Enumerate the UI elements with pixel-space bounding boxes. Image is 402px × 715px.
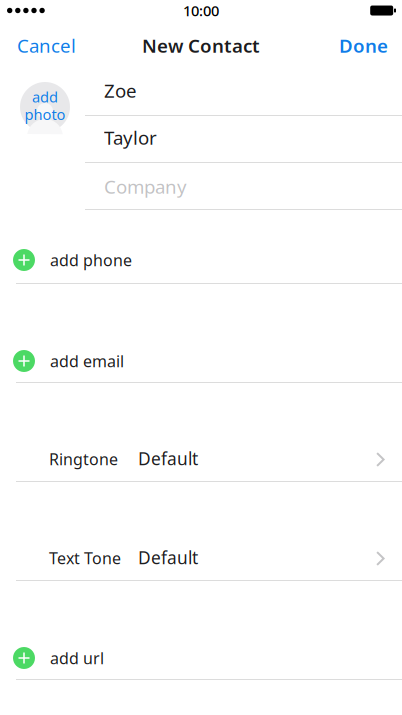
- staticText: Cancel: [17, 33, 76, 58]
- button[interactable]: add email: [0, 284, 402, 382]
- button[interactable]: Cancel: [0, 21, 90, 70]
- staticText: Taylor: [104, 125, 157, 150]
- staticText: 10:00: [183, 1, 219, 20]
- staticText: Ringtone: [49, 448, 118, 470]
- staticText: New Contact: [142, 33, 260, 58]
- staticText: Done: [339, 33, 388, 58]
- button[interactable]: Text Tone: [0, 482, 402, 580]
- button[interactable]: Zoe: [85, 70, 402, 115]
- button[interactable]: add phone: [0, 210, 402, 283]
- button[interactable]: Ringtone: [0, 383, 402, 481]
- staticText: Company: [104, 174, 187, 199]
- button[interactable]: Taylor: [85, 116, 402, 162]
- staticText: add: [32, 87, 58, 106]
- staticText: Default: [138, 546, 198, 569]
- button[interactable]: Done: [325, 21, 402, 70]
- staticText: add url: [50, 647, 104, 669]
- button[interactable]: Company: [85, 163, 402, 209]
- staticText: add phone: [50, 249, 132, 271]
- button[interactable]: add url: [0, 581, 402, 679]
- staticText: add email: [50, 350, 124, 372]
- staticText: Default: [138, 447, 198, 470]
- button[interactable]: Add photo: [20, 82, 70, 132]
- staticText: Text Tone: [49, 547, 121, 569]
- staticText: photo: [24, 104, 65, 124]
- staticText: Zoe: [104, 78, 137, 103]
